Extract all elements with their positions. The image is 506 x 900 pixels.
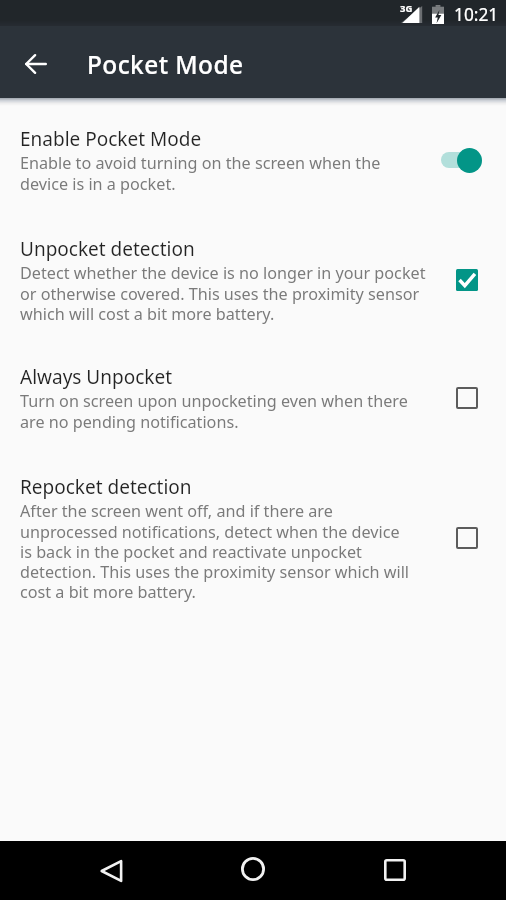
button[interactable]: Unchecked: [447, 378, 487, 418]
staticText: After the screen went off, and if there …: [20, 500, 409, 602]
staticText: Pocket Mode: [87, 48, 244, 81]
staticText: Turn on screen upon unpocketing even whe…: [20, 390, 408, 432]
button[interactable]: Unpocket detection: [0, 236, 506, 324]
button[interactable]: Navigate up: [12, 26, 60, 98]
button[interactable]: Home: [229, 841, 277, 900]
button[interactable]: Unchecked: [447, 518, 487, 558]
staticText: 3G: [400, 2, 413, 15]
staticText: Detect whether the device is no longer i…: [20, 262, 426, 324]
button[interactable]: Recent apps: [371, 841, 419, 900]
staticText: Enable to avoid turning on the screen wh…: [20, 152, 381, 194]
staticText: 10:21: [454, 3, 499, 27]
button[interactable]: Repocket detection: [0, 474, 506, 602]
staticText: Always Unpocket: [20, 364, 173, 390]
staticText: Repocket detection: [20, 474, 192, 500]
button[interactable]: Always Unpocket: [0, 364, 506, 432]
button[interactable]: Back: [88, 841, 136, 900]
staticText: Unpocket detection: [20, 236, 195, 262]
button[interactable]: Checked: [447, 260, 487, 300]
button[interactable]: Enable Pocket Mode: [0, 126, 506, 194]
button[interactable]: Enable Pocket Mode toggle: [440, 143, 494, 177]
staticText: Enable Pocket Mode: [20, 126, 202, 152]
